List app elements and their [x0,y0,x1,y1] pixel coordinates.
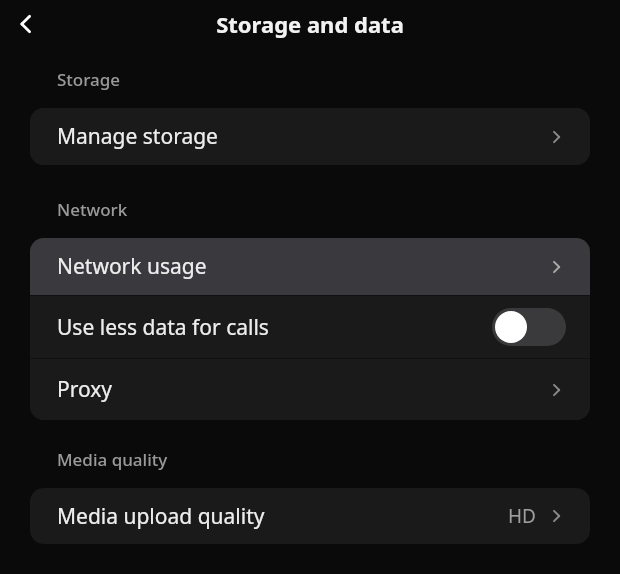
staticText: Proxy [57,375,113,404]
button[interactable]: Use less data for calls [30,296,590,358]
staticText: Storage [57,68,121,91]
button[interactable]: Back [3,0,51,48]
staticText: HD [508,503,536,529]
staticText: Manage storage [57,122,218,151]
staticText: Network usage [57,252,207,281]
staticText: Media quality [57,448,168,471]
button[interactable]: Network usage [30,238,590,295]
button[interactable]: Media upload quality [30,488,590,544]
button[interactable]: Use less data for calls toggle [492,308,566,346]
staticText: Network [57,198,128,221]
button[interactable]: Proxy [30,359,590,420]
staticText: Storage and data [216,9,404,39]
button[interactable]: Manage storage [30,108,590,165]
staticText: Media upload quality [57,502,265,531]
staticText: Use less data for calls [57,313,269,342]
